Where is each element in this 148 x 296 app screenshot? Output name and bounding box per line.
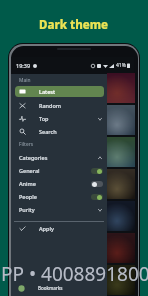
staticText: PP • 4008891800 (1, 261, 148, 287)
staticText: Anime (19, 180, 36, 187)
staticText: Random (39, 102, 62, 109)
button[interactable]: Purity (11, 203, 107, 216)
staticText: Filters (19, 141, 34, 148)
staticText: 41% (116, 62, 126, 69)
staticText: Categories (19, 154, 48, 161)
staticText: Top (39, 115, 49, 122)
staticText: People (19, 193, 37, 200)
staticText: Purity (19, 206, 35, 213)
staticText: Main (19, 77, 31, 84)
button[interactable]: Categories (11, 151, 107, 164)
staticText: Bookmarks (38, 285, 63, 291)
staticText: 19:39 (16, 62, 31, 69)
staticText: Latest (39, 88, 56, 95)
button[interactable]: General (11, 164, 107, 177)
button[interactable]: Search (11, 125, 107, 138)
button[interactable]: Anime (11, 177, 107, 190)
button[interactable]: People (11, 190, 107, 203)
button[interactable]: Top (11, 112, 107, 125)
staticText: Search (39, 128, 57, 135)
button[interactable]: Latest (15, 86, 104, 97)
staticText: Dark theme (39, 17, 109, 33)
button[interactable]: Random (11, 99, 107, 112)
button[interactable]: Apply (11, 222, 107, 235)
button[interactable]: Bookmarks (11, 281, 107, 295)
staticText: General (19, 167, 40, 174)
staticText: Apply (39, 225, 54, 232)
